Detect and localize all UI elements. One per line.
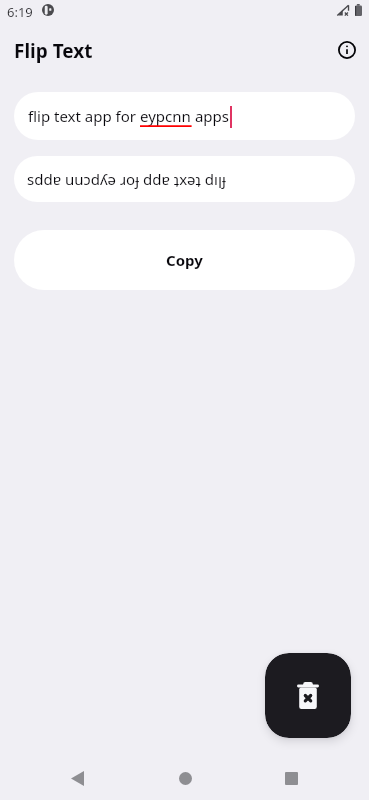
staticText: eypcnn bbox=[140, 106, 191, 126]
button[interactable]: About bbox=[331, 34, 363, 66]
staticText: flip text app for bbox=[28, 106, 140, 126]
button[interactable]: Home bbox=[162, 756, 208, 800]
staticText: apps bbox=[191, 106, 229, 126]
button[interactable]: flip text app for bbox=[14, 92, 355, 140]
button[interactable]: Clear text bbox=[265, 653, 351, 738]
button[interactable]: Back bbox=[54, 756, 100, 800]
button[interactable]: sddɐ uuɔdʎǝ ɹoɟ ddɐ ʇxǝʇ dıןɟ bbox=[14, 156, 355, 202]
button[interactable]: Recents bbox=[268, 756, 314, 800]
button[interactable]: Copy bbox=[14, 230, 355, 290]
staticText: sddɐ uuɔdʎǝ ɹoɟ ddɐ ʇxǝʇ dıןɟ bbox=[27, 169, 226, 189]
staticText: Flip Text bbox=[14, 38, 93, 64]
staticText: Copy bbox=[166, 250, 203, 270]
staticText: 6:19 bbox=[7, 3, 33, 21]
